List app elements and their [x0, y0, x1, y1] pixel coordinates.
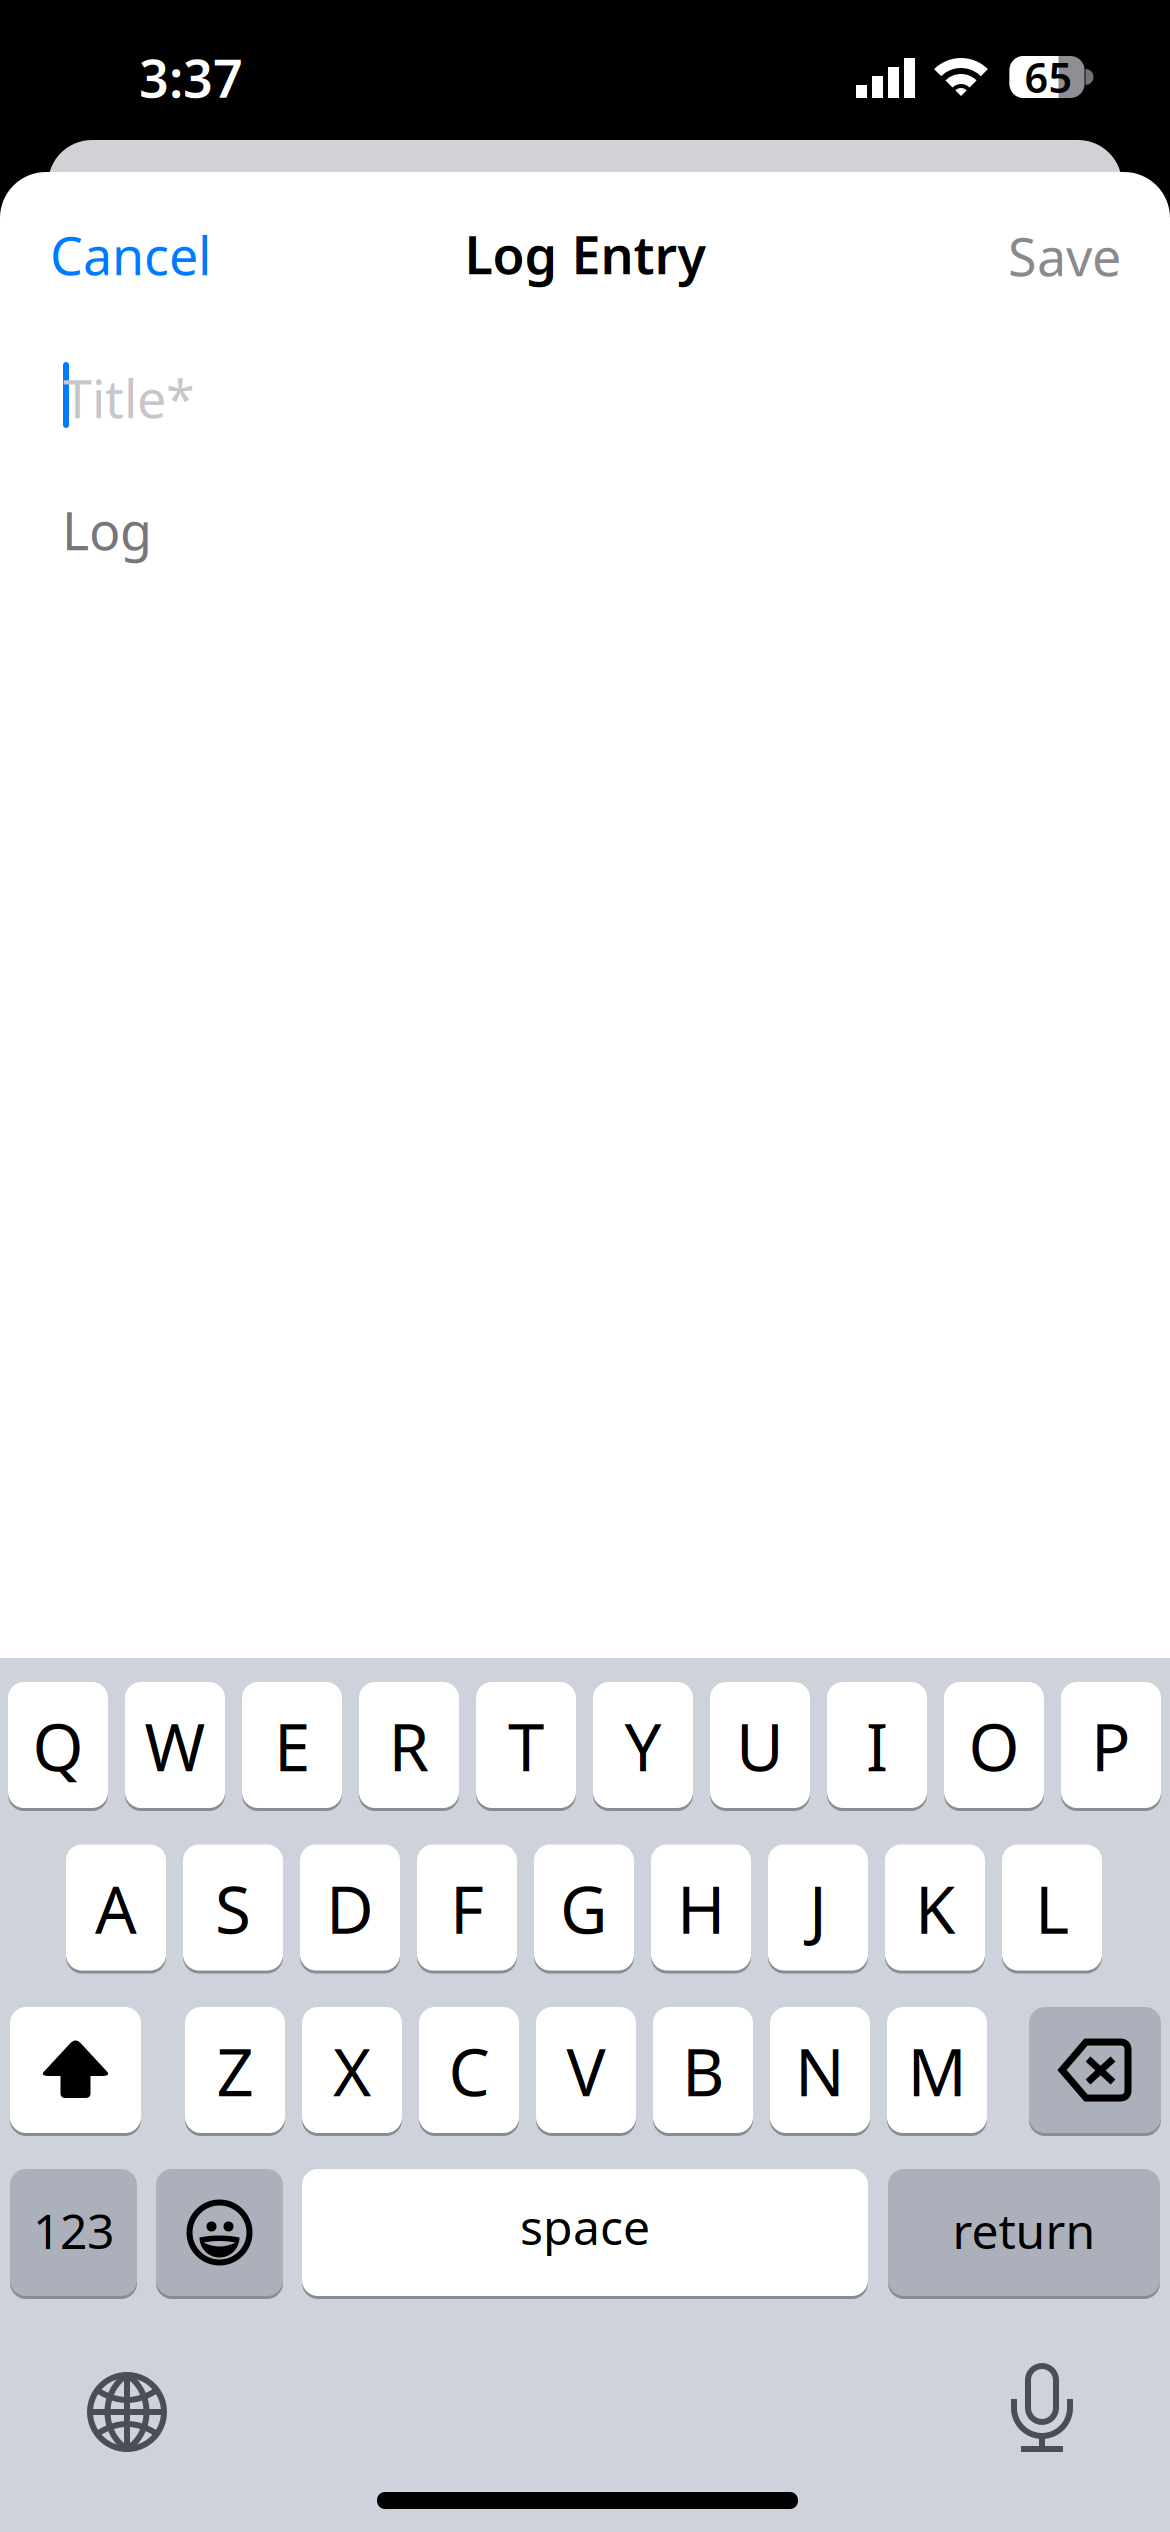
staticText: Title*	[63, 363, 195, 433]
button[interactable]: S	[183, 1844, 283, 1970]
button[interactable]: 123	[10, 2169, 137, 2296]
staticText: Z	[216, 2028, 253, 2114]
staticText: 123	[33, 2199, 114, 2262]
button[interactable]: T	[476, 1682, 576, 1808]
staticText: I	[866, 1703, 888, 1789]
staticText: Cancel	[50, 220, 211, 290]
button[interactable]: B	[653, 2007, 753, 2133]
button[interactable]: V	[536, 2007, 636, 2133]
staticText: M	[907, 2028, 966, 2114]
staticText: J	[809, 1865, 827, 1952]
button[interactable]: W	[125, 1682, 225, 1808]
button[interactable]: Cancel	[50, 224, 270, 286]
staticText: Log Entry	[464, 219, 705, 289]
button[interactable]: J	[768, 1844, 868, 1970]
staticText: T	[508, 1703, 544, 1789]
button[interactable]: Title*	[63, 362, 1107, 442]
staticText: 3:37	[139, 43, 243, 112]
staticText: Log	[62, 495, 152, 565]
staticText: N	[795, 2028, 845, 2114]
button[interactable]: Save	[921, 225, 1121, 287]
staticText: H	[677, 1865, 725, 1952]
staticText: Y	[624, 1703, 661, 1789]
staticText: return	[952, 2199, 1095, 2262]
button[interactable]: C	[419, 2007, 519, 2133]
staticText: C	[448, 2028, 489, 2114]
button[interactable]: R	[359, 1682, 459, 1808]
staticText: X	[333, 2028, 371, 2114]
staticText: L	[1035, 1865, 1069, 1952]
staticText: E	[274, 1703, 310, 1789]
staticText: Save	[1008, 221, 1121, 291]
button[interactable]: M	[887, 2007, 987, 2133]
staticText: U	[736, 1703, 784, 1789]
button[interactable]: Shift	[10, 2007, 141, 2133]
staticText: G	[560, 1865, 608, 1952]
staticText: P	[1091, 1703, 1131, 1789]
button[interactable]: Delete	[1029, 2007, 1161, 2133]
button[interactable]: K	[885, 1844, 985, 1970]
button[interactable]: O	[944, 1682, 1044, 1808]
button[interactable]: D	[300, 1844, 400, 1970]
staticText: space	[520, 2195, 650, 2258]
button[interactable]: space	[302, 2169, 868, 2296]
button[interactable]: N	[770, 2007, 870, 2133]
staticText: O	[968, 1703, 1019, 1789]
button[interactable]: Q	[8, 1682, 108, 1808]
button[interactable]: H	[651, 1844, 751, 1970]
button[interactable]: G	[534, 1844, 634, 1970]
button[interactable]: Y	[593, 1682, 693, 1808]
button[interactable]: I	[827, 1682, 927, 1808]
staticText: K	[915, 1865, 955, 1952]
button[interactable]: P	[1061, 1682, 1161, 1808]
staticText: Q	[32, 1703, 83, 1789]
staticText: V	[566, 2028, 605, 2114]
button[interactable]: Emoji	[156, 2169, 283, 2296]
staticText: F	[450, 1865, 484, 1952]
button[interactable]: X	[302, 2007, 402, 2133]
staticText: A	[95, 1865, 137, 1952]
button[interactable]: F	[417, 1844, 517, 1970]
button[interactable]: Z	[185, 2007, 285, 2133]
staticText: S	[215, 1865, 251, 1952]
staticText: D	[326, 1865, 374, 1952]
staticText: 65	[1024, 50, 1072, 104]
button[interactable]: U	[710, 1682, 810, 1808]
staticText: R	[388, 1703, 429, 1789]
staticText: W	[144, 1703, 205, 1789]
button[interactable]: E	[242, 1682, 342, 1808]
button[interactable]: Next keyboard	[87, 2372, 167, 2452]
staticText: B	[682, 2028, 724, 2114]
button[interactable]: return	[888, 2169, 1160, 2296]
button[interactable]: A	[66, 1844, 166, 1970]
button[interactable]: L	[1002, 1844, 1102, 1970]
button[interactable]: Dictate	[1013, 2366, 1071, 2452]
button[interactable]: Log	[62, 499, 1106, 561]
